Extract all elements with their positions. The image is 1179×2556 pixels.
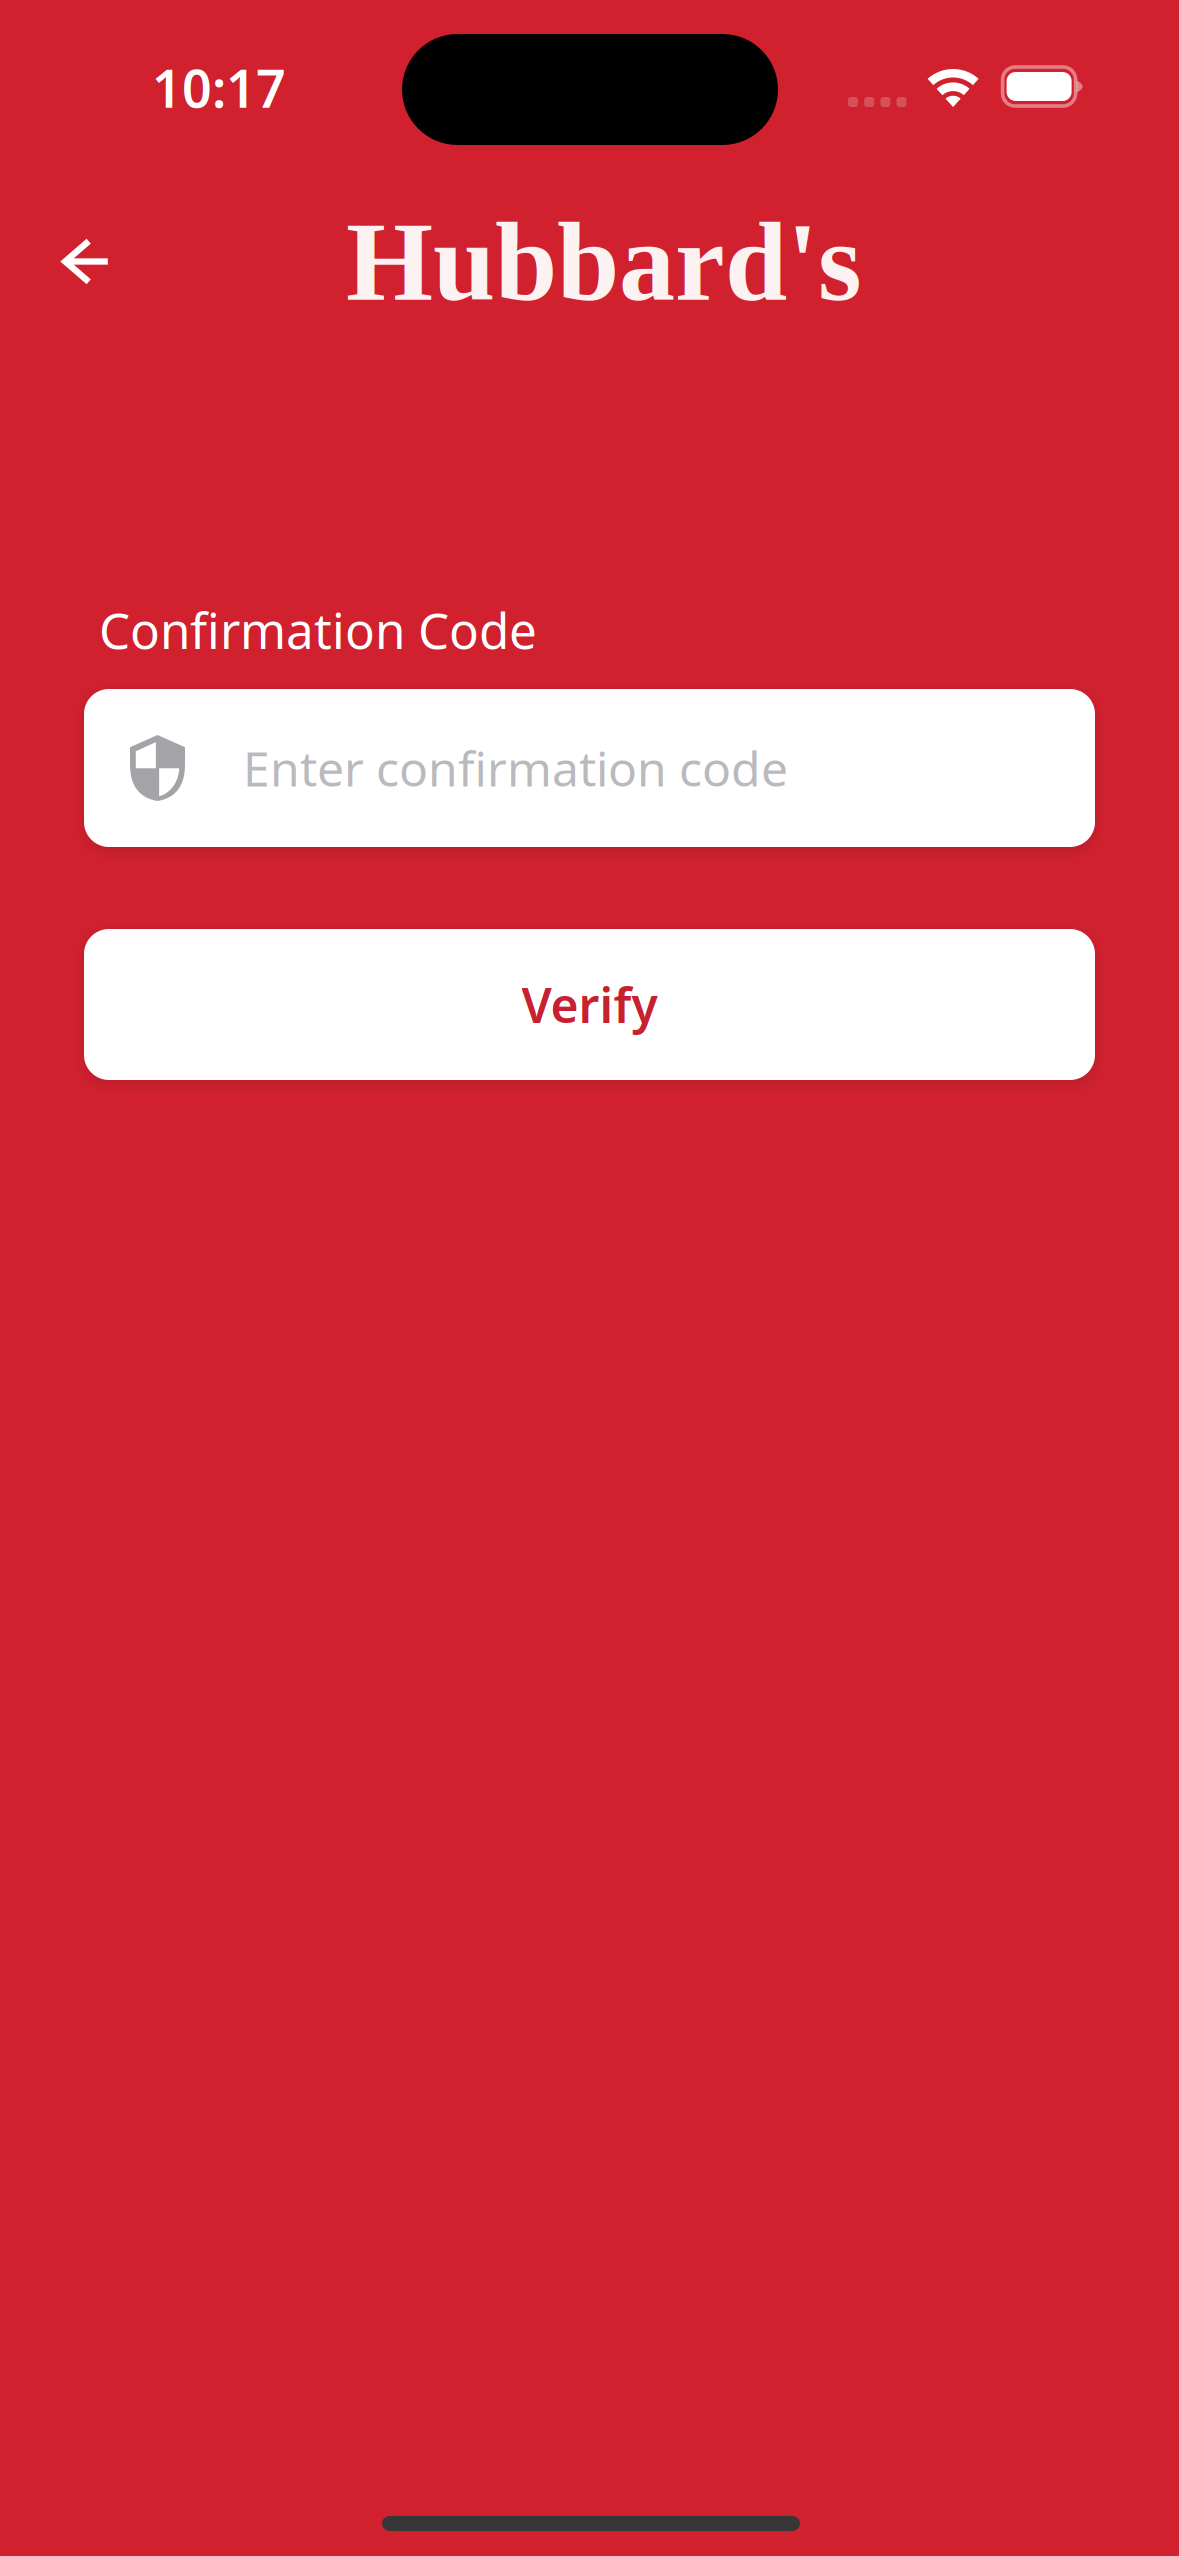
staticText: Hubbard's (346, 200, 862, 324)
button[interactable]: Verify (84, 929, 1095, 1080)
staticText: Enter confirmation code (243, 736, 788, 800)
button[interactable]: Enter confirmation code (84, 689, 1095, 847)
staticText: Verify (521, 973, 657, 1036)
staticText: Confirmation Code (99, 597, 537, 662)
button[interactable]: Back (32, 206, 141, 317)
staticText: 10:17 (152, 53, 286, 122)
